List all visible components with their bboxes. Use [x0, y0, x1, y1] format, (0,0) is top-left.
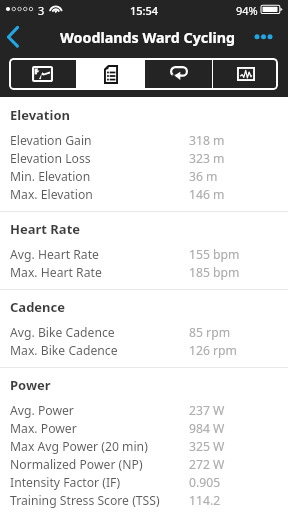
staticText: 318 m: [189, 132, 225, 149]
button[interactable]: Max. Heart Rate: [0, 262, 288, 280]
staticText: Max. Bike Cadence: [10, 342, 118, 359]
staticText: Cadence: [10, 298, 66, 316]
button[interactable]: Elevation Gain: [0, 130, 288, 148]
staticText: 237 W: [189, 402, 225, 419]
staticText: Elevation Loss: [10, 150, 91, 167]
button[interactable]: Intensity Factor (IF): [0, 472, 288, 490]
staticText: 3: [38, 3, 45, 18]
staticText: Elevation: [10, 106, 70, 124]
button[interactable]: Training Stress Score (TSS): [0, 490, 288, 508]
button[interactable]: Max Avg Power (20 min): [0, 436, 288, 454]
staticText: 272 W: [189, 456, 225, 473]
button[interactable]: Map: [9, 58, 76, 90]
button[interactable]: Avg. Bike Cadence: [0, 322, 288, 340]
button[interactable]: Elevation Loss: [0, 148, 288, 166]
staticText: 984 W: [189, 420, 225, 437]
staticText: 36 m: [189, 168, 218, 185]
button[interactable]: Normalized Power (NP): [0, 454, 288, 472]
staticText: 325 W: [189, 438, 225, 455]
button[interactable]: More options: [250, 20, 284, 52]
staticText: 85 rpm: [189, 324, 231, 341]
staticText: Max. Heart Rate: [10, 264, 102, 281]
staticText: Intensity Factor (IF): [10, 474, 121, 491]
button[interactable]: Details: [77, 58, 144, 90]
staticText: 146 m: [189, 186, 225, 203]
staticText: 126 rpm: [189, 342, 238, 359]
staticText: Elevation Gain: [10, 132, 92, 149]
button[interactable]: Max. Elevation: [0, 184, 288, 202]
staticText: Training Stress Score (TSS): [10, 492, 160, 509]
staticText: Min. Elevation: [10, 168, 91, 185]
staticText: 323 m: [189, 150, 225, 167]
staticText: Power: [10, 376, 51, 394]
button[interactable]: Max. Power: [0, 418, 288, 436]
staticText: 0.905: [189, 474, 221, 491]
staticText: 15:54: [0, 3, 288, 18]
staticText: 185 bpm: [189, 264, 240, 281]
staticText: Avg. Bike Cadence: [10, 324, 115, 341]
staticText: Max Avg Power (20 min): [10, 438, 148, 455]
button[interactable]: Max. Bike Cadence: [0, 340, 288, 358]
staticText: 94%: [236, 3, 258, 18]
staticText: Avg. Heart Rate: [10, 246, 99, 263]
staticText: 114.2: [189, 492, 221, 509]
staticText: Max. Elevation: [10, 186, 93, 203]
staticText: Max. Power: [10, 420, 77, 437]
staticText: Woodlands Ward Cycling: [60, 28, 236, 47]
staticText: Avg. Power: [10, 402, 74, 419]
button[interactable]: Avg. Power: [0, 400, 288, 418]
button[interactable]: Laps: [145, 58, 212, 90]
button[interactable]: Min. Elevation: [0, 166, 288, 184]
staticText: Heart Rate: [10, 220, 81, 238]
button[interactable]: Avg. Heart Rate: [0, 244, 288, 262]
button[interactable]: Back: [0, 20, 34, 52]
button[interactable]: Charts: [213, 58, 278, 90]
staticText: Normalized Power (NP): [10, 456, 143, 473]
staticText: 155 bpm: [189, 246, 240, 263]
